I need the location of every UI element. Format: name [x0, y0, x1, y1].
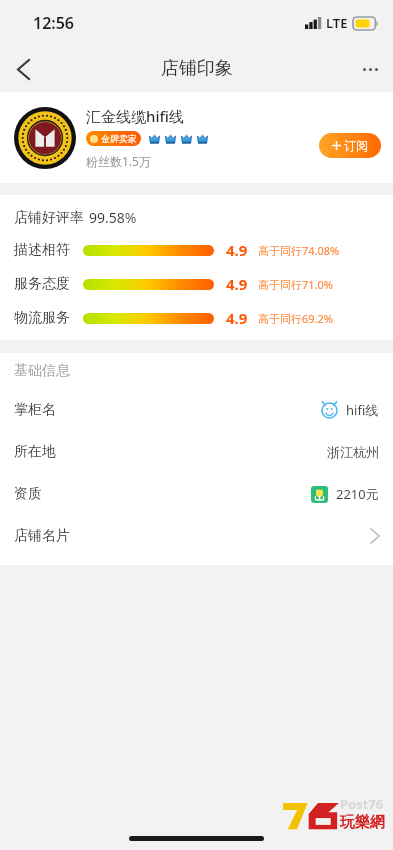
staticText: LTE	[326, 14, 348, 32]
staticText: 高于同行74.08%	[258, 243, 340, 258]
button[interactable]: 所在地	[0, 431, 393, 473]
button[interactable]: 掌柜名	[0, 389, 393, 431]
staticText: 粉丝数1.5万	[86, 153, 151, 169]
staticText: 掌柜名	[14, 401, 56, 419]
staticText: 浙江杭州	[327, 444, 379, 460]
staticText: 12:56	[33, 12, 75, 34]
button[interactable]: 店铺名片	[0, 515, 393, 557]
staticText: 汇金线缆hifi线	[86, 106, 184, 126]
staticText: 店铺印象	[161, 57, 233, 80]
staticText: 服务态度	[14, 275, 70, 293]
staticText: 订阅	[344, 138, 368, 153]
staticText: 所在地	[14, 443, 56, 461]
button[interactable]: More options	[347, 46, 393, 92]
staticText: 高于同行71.0%	[258, 277, 333, 292]
staticText: 描述相符	[14, 241, 70, 259]
staticText: Post76	[340, 795, 384, 813]
staticText: 店铺好评率	[14, 209, 84, 227]
staticText: 高于同行69.2%	[258, 311, 333, 326]
staticText: 2210元	[336, 485, 379, 503]
staticText: hifi线	[346, 401, 379, 419]
button[interactable]: 订阅	[319, 133, 381, 158]
staticText: 资质	[14, 485, 42, 503]
staticText: 金牌卖家	[101, 133, 137, 144]
staticText: 基础信息	[14, 362, 70, 380]
staticText: 玩樂網	[340, 813, 385, 832]
button[interactable]: Back	[0, 46, 46, 92]
staticText: 物流服务	[14, 309, 70, 327]
staticText: 4.9	[226, 240, 248, 260]
staticText: 99.58%	[89, 208, 137, 227]
button[interactable]: 资质	[0, 473, 393, 515]
staticText: 4.9	[226, 274, 248, 294]
staticText: 4.9	[226, 308, 248, 328]
staticText: 店铺名片	[14, 527, 70, 545]
